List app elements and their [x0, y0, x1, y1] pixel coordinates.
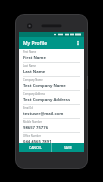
staticText: 98657 75776 [23, 125, 49, 131]
staticText: CANCEL [29, 145, 42, 150]
staticText: First Name [23, 50, 37, 54]
button[interactable]: SAVE [52, 143, 84, 152]
staticText: Last Name [23, 64, 36, 68]
staticText: Mobile Number [23, 120, 43, 124]
staticText: SAVE [64, 145, 72, 150]
button[interactable]: CANCEL [19, 143, 51, 152]
button[interactable]: Mobile Number [19, 119, 84, 133]
staticText: Last Name [23, 69, 46, 75]
staticText: Test Company Address [23, 97, 71, 103]
staticText: Test Company Name [23, 83, 66, 89]
staticText: Office Number [23, 134, 41, 138]
staticText: 044 4565 7891 [23, 139, 52, 143]
button[interactable]: Office Number [19, 133, 84, 143]
staticText: Company Address [23, 92, 46, 96]
button[interactable]: Email Id [19, 105, 84, 119]
button[interactable]: Company Name [19, 77, 84, 91]
button[interactable]: More options [72, 37, 84, 49]
staticText: First Name [23, 55, 46, 61]
button[interactable]: First Name [19, 49, 84, 63]
staticText: testuser@mail.com [23, 111, 64, 117]
staticText: My Profile [23, 40, 48, 47]
staticText: Email Id [23, 106, 33, 110]
button[interactable]: Last Name [19, 63, 84, 77]
button[interactable]: Company Address [19, 91, 84, 105]
staticText: Company Name [23, 78, 43, 82]
